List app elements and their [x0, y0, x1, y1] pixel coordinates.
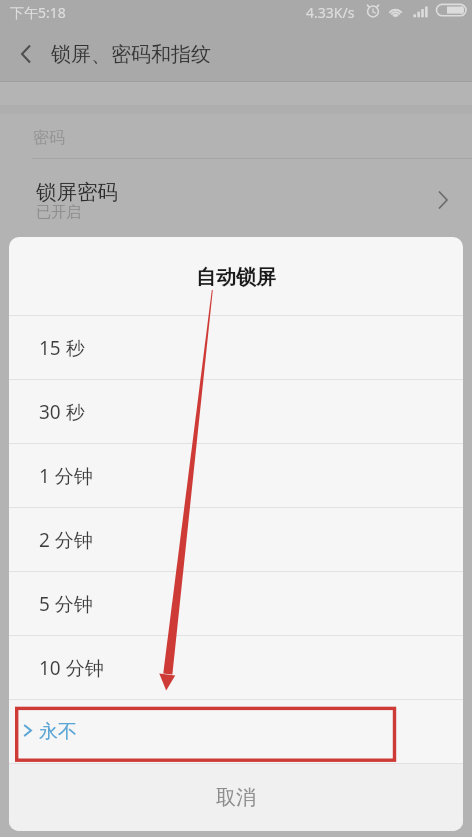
button[interactable]: 30 秒 [9, 380, 463, 443]
staticText: 锁屏、密码和指纹 [51, 42, 211, 67]
button[interactable]: 永不 [9, 700, 463, 763]
staticText: 30 秒 [39, 399, 85, 425]
staticText: 2 分钟 [39, 527, 93, 553]
button[interactable]: 2 分钟 [9, 508, 463, 571]
button[interactable]: 15 秒 [9, 316, 463, 379]
button[interactable]: 5 分钟 [9, 572, 463, 635]
staticText: 10 分钟 [39, 655, 104, 681]
button[interactable]: 1 分钟 [9, 444, 463, 507]
button[interactable]: 锁屏密码 [0, 159, 472, 234]
staticText: 4.33K/s [306, 3, 355, 22]
staticText: 自动锁屏 [196, 265, 276, 290]
staticText: 下午5:18 [10, 3, 66, 22]
staticText: 永不 [39, 720, 77, 744]
button[interactable]: Back [0, 30, 48, 78]
staticText: 密码 [33, 128, 65, 148]
staticText: 1 分钟 [39, 463, 93, 489]
staticText: 15 秒 [39, 335, 85, 361]
button[interactable]: 取消 [9, 764, 463, 831]
button[interactable]: 10 分钟 [9, 636, 463, 699]
staticText: 取消 [216, 785, 256, 810]
staticText: 锁屏密码 [36, 179, 118, 205]
staticText: 5 分钟 [39, 591, 93, 617]
staticText: 已开启 [36, 203, 81, 222]
